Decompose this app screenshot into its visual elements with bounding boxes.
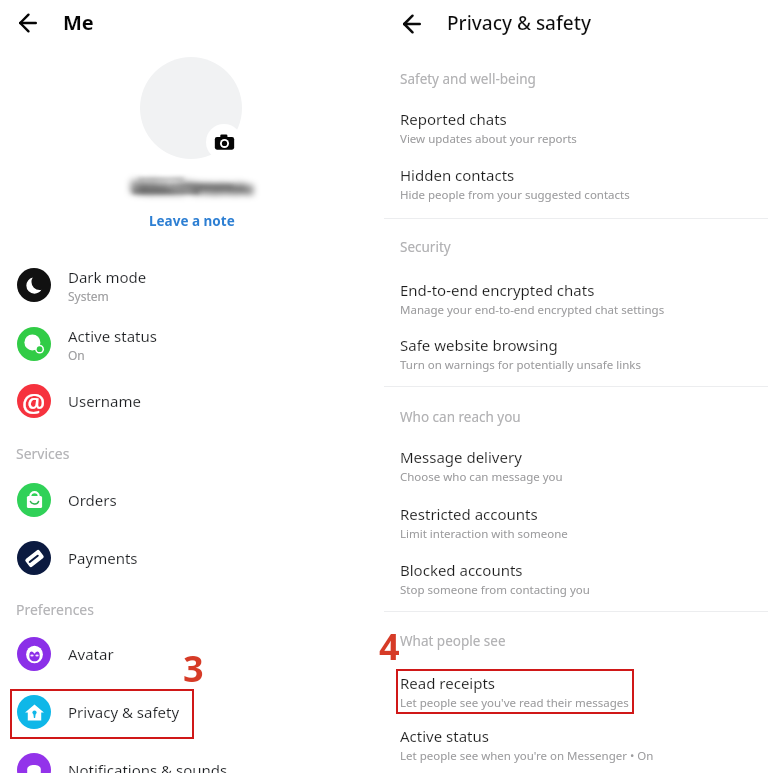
button[interactable]: Safe website browsing — [400, 335, 760, 373]
staticText: Leave a note — [149, 212, 235, 230]
staticText: System — [68, 288, 109, 304]
button[interactable]: Change photo — [206, 124, 242, 160]
staticText: Blocked accounts — [400, 560, 523, 580]
staticText: Aleks Vranova — [136, 176, 260, 201]
staticText: Let people see you've read their message… — [400, 695, 629, 711]
staticText: 4 — [379, 622, 400, 671]
staticText: Aleks Vranova — [131, 175, 255, 200]
staticText: Username — [68, 391, 141, 411]
staticText: Me — [63, 9, 94, 36]
staticText: Payments — [68, 548, 138, 568]
button[interactable]: Read receipts — [400, 673, 760, 711]
button[interactable]: End-to-end encrypted chats — [400, 280, 760, 318]
button[interactable]: Leave a note — [146, 210, 238, 232]
staticText: Aleks Vranova — [139, 177, 263, 202]
staticText: Aleks Vranova — [129, 175, 253, 200]
staticText: Active status — [68, 326, 157, 346]
button[interactable]: Profile photo — [140, 57, 242, 159]
button[interactable]: Active status — [0, 316, 384, 372]
staticText: Limit interaction with someone — [400, 526, 568, 542]
staticText: Manage your end-to-end encrypted chat se… — [400, 302, 665, 318]
staticText: Aleks Vranova — [140, 177, 264, 202]
staticText: Aleks Vranova — [128, 175, 252, 200]
staticText: What people see — [400, 632, 506, 650]
staticText: Privacy & safety — [68, 702, 180, 722]
staticText: End-to-end encrypted chats — [400, 280, 595, 300]
staticText: Security — [400, 238, 451, 256]
staticText: Aleks Vranova — [135, 176, 259, 201]
staticText: Orders — [68, 490, 117, 510]
button[interactable]: Active status — [400, 726, 760, 764]
staticText: Restricted accounts — [400, 504, 538, 524]
button[interactable]: Orders — [0, 472, 384, 528]
staticText: View updates about your reports — [400, 131, 577, 147]
button[interactable]: Dark mode — [0, 257, 384, 313]
button[interactable]: Hidden contacts — [400, 165, 760, 203]
staticText: Dark mode — [68, 267, 147, 287]
staticText: Aleks Vranova — [123, 173, 247, 198]
staticText: Aleks Vranova — [134, 176, 258, 201]
button[interactable]: Message delivery — [400, 447, 760, 485]
staticText: Aleks Vranova — [130, 175, 254, 200]
staticText: Aleks Vranova — [132, 175, 256, 200]
button[interactable]: Reported chats — [400, 109, 760, 147]
staticText: Aleks Vranova — [126, 174, 250, 199]
staticText: Aleks Vranova — [127, 174, 251, 199]
button[interactable]: Avatar — [0, 626, 384, 682]
staticText: Notifications & sounds — [68, 760, 228, 773]
staticText: Read receipts — [400, 673, 496, 693]
button[interactable]: Restricted accounts — [400, 504, 760, 542]
staticText: Turn on warnings for potentially unsafe … — [400, 357, 641, 373]
button[interactable]: Blocked accounts — [400, 560, 760, 598]
staticText: Aleks Vranova — [137, 177, 261, 202]
staticText: Who can reach you — [400, 408, 521, 426]
staticText: Safety and well-being — [400, 70, 536, 88]
button[interactable]: Back — [0, 0, 56, 45]
staticText: Hide people from your suggested contacts — [400, 187, 630, 203]
button[interactable]: Notifications & sounds — [0, 742, 384, 773]
staticText: On — [68, 347, 85, 363]
staticText: Choose who can message you — [400, 469, 563, 485]
button[interactable]: @ — [0, 373, 384, 429]
staticText: Aleks Vranova — [133, 176, 257, 201]
staticText: 3 — [183, 644, 204, 693]
staticText: Aleks Vranova — [141, 177, 265, 202]
staticText: Services — [16, 444, 70, 463]
button[interactable]: Back — [384, 0, 440, 45]
staticText: Avatar — [68, 644, 114, 664]
button[interactable]: Payments — [0, 530, 384, 586]
staticText: Message delivery — [400, 447, 522, 467]
staticText: Aleks Vranova — [121, 173, 245, 198]
button[interactable]: Privacy & safety — [0, 684, 384, 740]
staticText: Preferences — [16, 600, 94, 619]
staticText: Safe website browsing — [400, 335, 558, 355]
staticText: Reported chats — [400, 109, 507, 129]
staticText: Aleks Vranova — [120, 173, 244, 198]
staticText: Aleks Vranova — [138, 177, 262, 202]
staticText: Aleks Vranova — [125, 174, 249, 199]
staticText: Hidden contacts — [400, 165, 515, 185]
staticText: Aleks Vranova — [124, 174, 248, 199]
staticText: Aleks Vranova — [122, 173, 246, 198]
staticText: @ — [22, 384, 46, 418]
staticText: Active status — [400, 726, 489, 746]
staticText: Privacy & safety — [447, 10, 591, 36]
staticText: Stop someone from contacting you — [400, 582, 590, 598]
staticText: Let people see when you're on Messenger … — [400, 748, 654, 764]
staticText: Aleks Vranova — [119, 173, 243, 198]
